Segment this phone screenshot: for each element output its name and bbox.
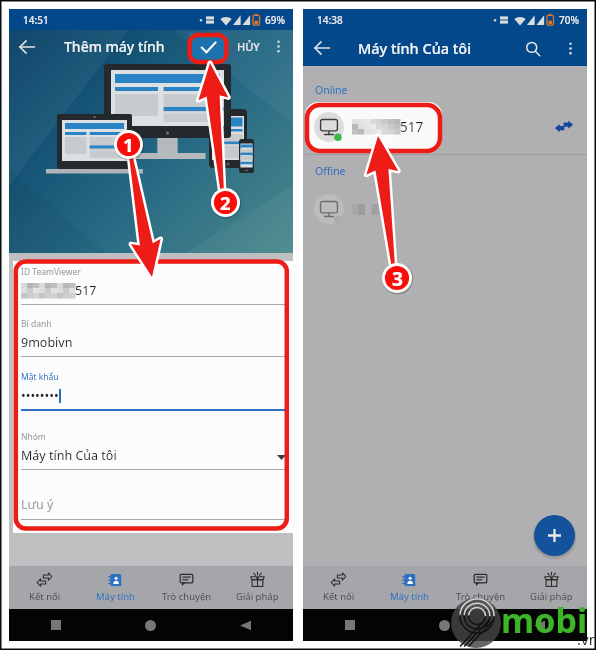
button[interactable]: Giải pháp xyxy=(516,566,587,609)
staticText: 3 xyxy=(392,265,403,291)
staticText: 69% xyxy=(265,13,285,27)
button[interactable]: Máy tính xyxy=(374,566,445,609)
staticText: ID TeamViewer xyxy=(21,266,81,278)
staticText: Nhóm xyxy=(21,431,46,443)
staticText: mobi xyxy=(501,597,588,643)
staticText: Giải pháp xyxy=(530,590,573,603)
staticText: .vn xyxy=(577,629,596,649)
button[interactable]: Trò chuyện xyxy=(445,566,516,609)
staticText: 2 xyxy=(220,190,231,215)
staticText: Bí danh xyxy=(21,318,52,330)
button[interactable]: 517 xyxy=(303,104,587,149)
staticText: Mật khẩu xyxy=(21,371,59,383)
staticText: Máy tính Của tôi xyxy=(358,38,472,58)
staticText: Kết nối xyxy=(29,590,61,603)
staticText: Máy tính Của tôi xyxy=(21,447,117,464)
button[interactable]: Confirm xyxy=(189,33,228,62)
staticText: 1 xyxy=(123,132,134,157)
staticText: Trò chuyện xyxy=(162,590,212,603)
button[interactable]: More options xyxy=(267,34,289,59)
staticText: Trò chuyện xyxy=(456,590,506,603)
button[interactable]: Add computer xyxy=(534,515,575,556)
button[interactable]: Trò chuyện xyxy=(151,566,222,609)
staticText: Online xyxy=(315,83,348,97)
staticText: Máy tính xyxy=(96,590,135,603)
staticText: 517 xyxy=(400,118,424,136)
staticText: 14:51 xyxy=(23,13,49,27)
button[interactable]: Máy tính xyxy=(80,566,151,609)
staticText: 9mobivn xyxy=(21,334,73,351)
button[interactable]: HỦY xyxy=(232,34,264,59)
staticText: 70% xyxy=(559,13,579,27)
staticText: Giải pháp xyxy=(236,590,279,603)
staticText: Offine xyxy=(315,164,346,178)
staticText: Kết nối xyxy=(323,590,355,603)
staticText: Lưu ý xyxy=(21,496,54,513)
staticText: HỦY xyxy=(237,39,260,54)
button[interactable]: Back xyxy=(311,37,333,59)
staticText: 14:38 xyxy=(317,13,343,27)
staticText: •••••••• xyxy=(21,387,59,404)
button[interactable]: Back xyxy=(16,36,38,58)
staticText: Máy tính xyxy=(390,590,429,603)
button[interactable]: More options xyxy=(559,37,581,59)
button[interactable]: Search xyxy=(521,37,545,61)
staticText: Thêm máy tính xyxy=(64,37,165,56)
button[interactable] xyxy=(303,189,587,229)
button[interactable]: Giải pháp xyxy=(222,566,293,609)
button[interactable]: Kết nối xyxy=(9,566,80,609)
button[interactable]: Kết nối xyxy=(303,566,374,609)
staticText: 517 xyxy=(75,282,97,299)
